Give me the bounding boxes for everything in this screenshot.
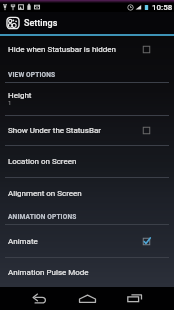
button[interactable]: Location on Screen [0,146,174,177]
staticText: ANIMATION OPTIONS [8,213,77,221]
staticText: Animate [8,237,142,246]
button[interactable]: Recent apps [112,287,158,310]
button[interactable]: Hide when Statusbar is hidden [0,36,174,62]
staticText: Height [8,91,32,100]
staticText: Settings [24,18,58,29]
staticText: Hide when Statusbar is hidden [8,45,142,54]
staticText: Alignment on Screen [8,189,151,198]
button[interactable]: Settings [0,12,174,34]
staticText: VIEW OPTIONS [8,71,56,79]
button[interactable]: Show Under the StatusBar [0,116,174,145]
button[interactable]: Animate [0,225,174,257]
button[interactable]: Home [64,287,111,310]
staticText: Location on Screen [8,157,151,166]
staticText: 1 [8,99,12,106]
button[interactable]: Height [0,83,174,115]
staticText: Show Under the StatusBar [8,126,142,135]
button[interactable]: Animation Pulse Mode [0,258,174,287]
button[interactable]: Alignment on Screen [0,178,174,208]
staticText: Animation Pulse Mode [8,268,151,277]
button[interactable]: Back [16,287,61,310]
staticText: 10:58 [152,3,173,12]
